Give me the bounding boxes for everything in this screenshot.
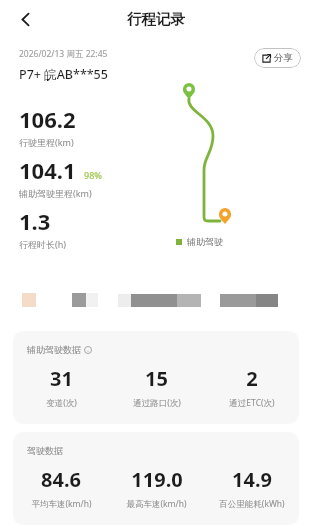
staticText: 行驶里程(km) bbox=[19, 136, 74, 148]
staticText: 通过路口(次) bbox=[133, 397, 181, 409]
staticText: 2026/02/13 周五 22:45 bbox=[19, 48, 108, 60]
staticText: 106.2 bbox=[19, 104, 76, 134]
staticText: 分享 bbox=[274, 52, 293, 64]
staticText: 平均车速(km/h) bbox=[31, 498, 92, 510]
staticText: 百公里能耗(kWh) bbox=[219, 498, 285, 510]
staticText: 通过ETC(次) bbox=[229, 397, 275, 409]
button[interactable]: Back bbox=[8, 2, 42, 36]
staticText: 14.9 bbox=[232, 466, 272, 493]
staticText: 2 bbox=[246, 365, 258, 392]
staticText: P7+ 皖AB***55 bbox=[19, 66, 108, 83]
staticText: 行程时长(h) bbox=[19, 238, 66, 250]
button[interactable]: 驾驶数据 bbox=[13, 432, 299, 525]
staticText: 104.1 bbox=[19, 155, 76, 185]
staticText: 84.6 bbox=[41, 466, 81, 493]
staticText: 31 bbox=[50, 365, 73, 392]
staticText: 辅助驾驶里程(km) bbox=[19, 187, 92, 199]
staticText: 行程记录 bbox=[127, 10, 185, 28]
staticText: 最高车速(km/h) bbox=[126, 498, 187, 510]
staticText: 驾驶数据 bbox=[27, 445, 63, 456]
staticText: 119.0 bbox=[131, 466, 183, 493]
staticText: 辅助驾驶数据 bbox=[27, 344, 81, 355]
button[interactable]: 辅助驾驶数据 bbox=[13, 331, 299, 424]
staticText: 辅助驾驶 bbox=[187, 236, 223, 247]
staticText: 15 bbox=[145, 365, 168, 392]
staticText: 98% bbox=[84, 169, 102, 181]
staticText: 变道(次) bbox=[46, 397, 77, 409]
button[interactable]: 分享 bbox=[254, 48, 301, 68]
staticText: 1.3 bbox=[19, 206, 51, 236]
